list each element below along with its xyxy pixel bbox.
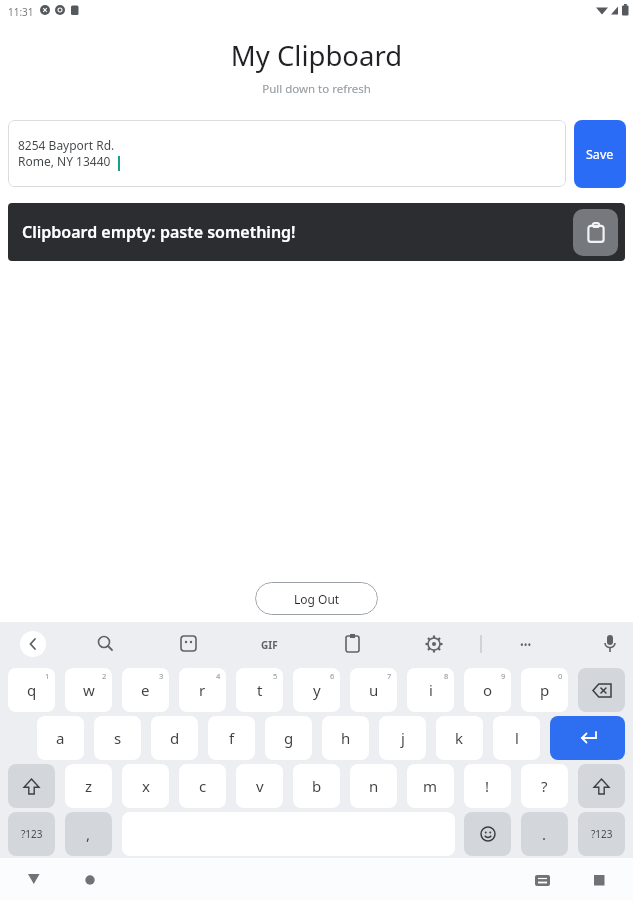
staticText: c — [199, 776, 207, 796]
staticText: b — [312, 776, 322, 796]
button[interactable]: y — [293, 668, 340, 712]
staticText: y — [313, 680, 321, 700]
staticText: z — [85, 776, 93, 796]
staticText: Clipboard empty: paste something! — [22, 221, 296, 243]
staticText: u — [369, 680, 379, 700]
staticText: 2 — [102, 671, 107, 681]
staticText: v — [256, 776, 264, 796]
staticText: m — [423, 776, 438, 796]
button[interactable]: k — [436, 716, 483, 760]
button[interactable]: t — [236, 668, 283, 712]
staticText: 6 — [330, 671, 335, 681]
button[interactable]: ! — [464, 764, 511, 808]
staticText: 11:31 — [8, 5, 34, 19]
button[interactable]: q — [8, 668, 55, 712]
button[interactable] — [8, 764, 55, 808]
button[interactable]: p — [521, 668, 568, 712]
button[interactable]: 8254 Bayport Rd. Rome, NY 13440 — [8, 120, 566, 187]
button[interactable]: ?123 — [8, 812, 55, 856]
staticText: o — [483, 680, 493, 700]
staticText: n — [369, 776, 379, 796]
staticText: g — [284, 728, 294, 748]
staticText: q — [27, 680, 37, 700]
button[interactable]: c — [179, 764, 226, 808]
staticText: k — [455, 728, 464, 748]
staticText: . — [542, 824, 547, 844]
button[interactable]: f — [208, 716, 255, 760]
button[interactable] — [20, 631, 46, 657]
button[interactable]: Save — [574, 120, 626, 188]
staticText: 4 — [216, 671, 221, 681]
staticText: Log Out — [294, 591, 340, 607]
staticText: , — [86, 824, 91, 844]
staticText: 8254 Bayport Rd. Rome, NY 13440 — [18, 137, 115, 170]
button[interactable]: l — [493, 716, 540, 760]
button[interactable]: Log Out — [255, 582, 378, 615]
button[interactable]: u — [350, 668, 397, 712]
staticText: ? — [541, 776, 548, 796]
staticText: 5 — [273, 671, 278, 681]
staticText: i — [429, 680, 433, 700]
button[interactable]: r — [179, 668, 226, 712]
button[interactable]: w — [65, 668, 112, 712]
staticText: 3 — [159, 671, 164, 681]
button[interactable] — [578, 668, 625, 712]
button[interactable]: x — [122, 764, 169, 808]
button[interactable]: d — [151, 716, 198, 760]
button[interactable]: z — [65, 764, 112, 808]
staticText: x — [142, 776, 150, 796]
staticText: l — [515, 728, 519, 748]
button[interactable]: v — [236, 764, 283, 808]
staticText: Save — [586, 146, 614, 163]
button[interactable]: i — [407, 668, 454, 712]
staticText: f — [229, 728, 235, 748]
button[interactable]: s — [94, 716, 141, 760]
staticText: r — [199, 680, 206, 700]
button[interactable] — [578, 764, 625, 808]
button[interactable]: h — [322, 716, 369, 760]
button[interactable]: m — [407, 764, 454, 808]
button[interactable]: j — [379, 716, 426, 760]
staticText: j — [401, 728, 405, 748]
staticText: t — [257, 680, 263, 700]
staticText: ! — [485, 776, 490, 796]
button[interactable]: b — [293, 764, 340, 808]
button[interactable]: e — [122, 668, 169, 712]
button[interactable]: a — [37, 716, 84, 760]
staticText: GIF — [261, 638, 278, 652]
staticText: 0 — [558, 671, 563, 681]
staticText: Pull down to refresh — [0, 81, 633, 97]
staticText: 7 — [387, 671, 392, 681]
button[interactable]: ? — [521, 764, 568, 808]
staticText: p — [540, 680, 550, 700]
button[interactable]: . — [521, 812, 568, 856]
button[interactable]: ?123 — [578, 812, 625, 856]
staticText: a — [56, 728, 65, 748]
staticText: d — [170, 728, 180, 748]
staticText: ••• — [520, 638, 532, 652]
staticText: s — [114, 728, 122, 748]
staticText: w — [83, 680, 95, 700]
staticText: 1 — [45, 671, 50, 681]
staticText: My Clipboard — [0, 37, 633, 74]
button[interactable] — [573, 209, 618, 256]
staticText: ?123 — [591, 827, 613, 841]
staticText: 8 — [444, 671, 449, 681]
staticText: h — [341, 728, 351, 748]
button[interactable]: g — [265, 716, 312, 760]
staticText: ?123 — [21, 827, 43, 841]
button[interactable]: o — [464, 668, 511, 712]
staticText: e — [141, 680, 150, 700]
button[interactable] — [550, 716, 625, 760]
button[interactable] — [464, 812, 511, 856]
button[interactable]: n — [350, 764, 397, 808]
staticText: 9 — [501, 671, 506, 681]
button[interactable]: , — [65, 812, 112, 856]
